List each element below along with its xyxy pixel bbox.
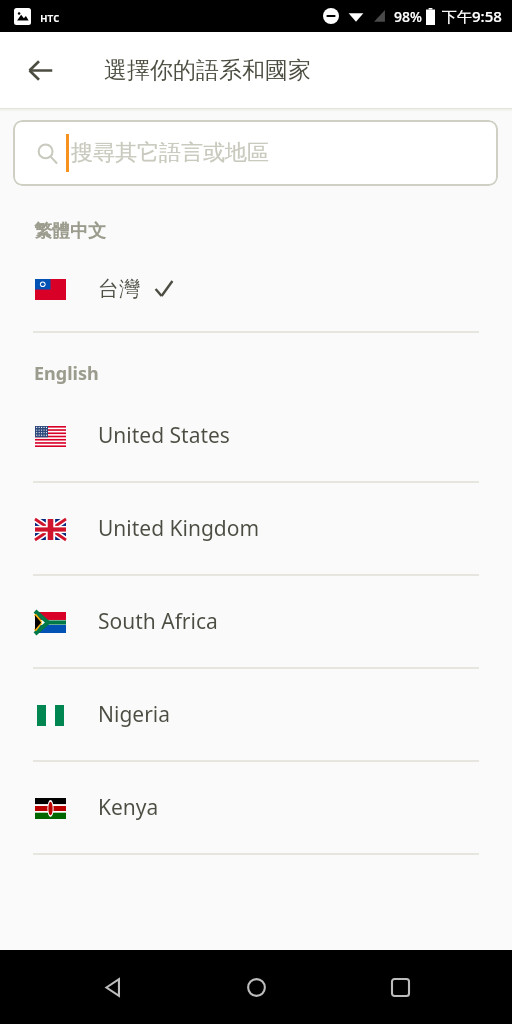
button[interactable]: Back [80,955,144,1019]
button[interactable]: Back [14,44,66,96]
staticText: нтc [40,9,60,25]
button[interactable]: 台灣 [0,247,512,331]
button[interactable]: Kenya [0,762,512,853]
staticText: Kenya [98,793,159,822]
button[interactable]: South Africa [0,576,512,667]
button[interactable]: Home [224,955,288,1019]
staticText: 98% [394,7,422,26]
button[interactable]: United States [0,390,512,481]
staticText: United States [98,421,230,450]
button[interactable]: Recent apps [368,955,432,1019]
staticText: 繁體中文 [34,220,106,243]
staticText: 搜尋其它語言或地區 [71,139,269,167]
button[interactable]: 搜尋其它語言或地區 [13,120,498,186]
button[interactable]: United Kingdom [0,483,512,574]
staticText: 台灣 [98,276,140,302]
staticText: United Kingdom [98,514,260,543]
staticText: 下午9:58 [442,6,502,26]
staticText: South Africa [98,607,218,636]
button[interactable]: Nigeria [0,669,512,760]
staticText: 選擇你的語系和國家 [104,56,311,85]
staticText: English [34,361,99,386]
staticText: Nigeria [98,700,171,729]
